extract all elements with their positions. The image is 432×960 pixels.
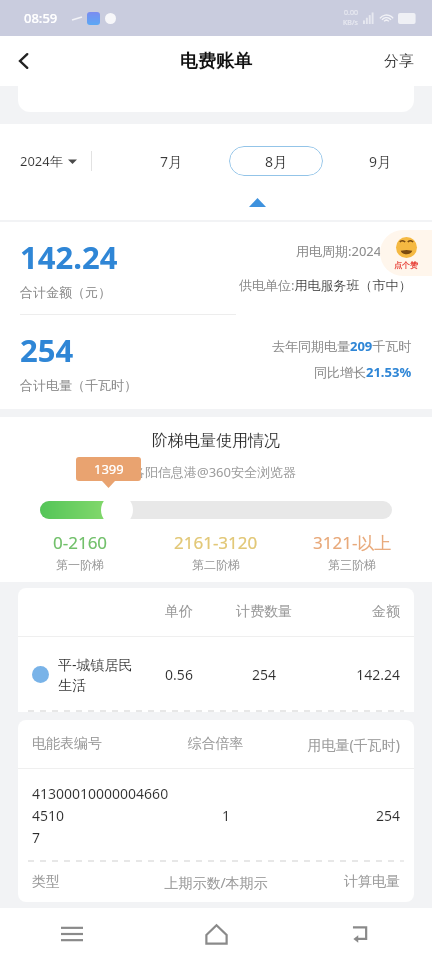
- staticText: 合计电量（千瓦时）: [20, 377, 137, 393]
- staticText: 0-2160: [53, 531, 108, 554]
- button[interactable]: 点个赞: [380, 230, 432, 276]
- staticText: 2161-3120: [174, 531, 258, 554]
- staticText: 供电单位:用电服务班（市中）: [239, 276, 412, 294]
- button[interactable]: 分享: [366, 40, 432, 83]
- button[interactable]: Back: [0, 37, 48, 85]
- staticText: 金额: [312, 603, 400, 621]
- staticText: 142.24: [20, 236, 118, 278]
- staticText: 用电周期:2024-08-0: [296, 242, 412, 260]
- staticText: 综合倍率: [167, 735, 264, 753]
- button[interactable]: 413000100000046604510 7: [32, 769, 400, 861]
- staticText: KB/s: [343, 18, 358, 28]
- button[interactable]: Back: [288, 908, 432, 960]
- button[interactable]: 7月: [150, 146, 193, 177]
- staticText: 单价: [142, 603, 216, 621]
- staticText: 用电量(千瓦时): [264, 735, 400, 754]
- staticText: 254: [277, 806, 400, 825]
- staticText: 1399: [94, 460, 124, 478]
- staticText: 合计金额（元）: [20, 284, 111, 300]
- staticText: 洛阳信息港@360安全浏览器: [132, 463, 296, 481]
- button[interactable]: 8月: [229, 146, 323, 176]
- staticText: 点个赞: [394, 260, 418, 270]
- staticText: 3121-以上: [313, 531, 392, 554]
- staticText: 电费账单: [180, 50, 252, 73]
- staticText: 去年同期电量209千瓦时: [272, 337, 412, 355]
- staticText: 0.00: [344, 8, 358, 18]
- button[interactable]: 平-城镇居民生活: [32, 637, 400, 711]
- staticText: 8月: [265, 152, 288, 171]
- staticText: 254: [20, 329, 74, 371]
- staticText: 1: [175, 806, 277, 825]
- staticText: 2024年: [20, 152, 63, 170]
- staticText: 08:59: [24, 9, 58, 27]
- staticText: 分享: [384, 52, 414, 71]
- staticText: 142.24: [312, 665, 400, 684]
- staticText: 计费数量: [216, 603, 312, 621]
- staticText: 电能表编号: [32, 735, 167, 753]
- staticText: 第一阶梯: [56, 557, 104, 572]
- button[interactable]: Home: [144, 908, 288, 960]
- staticText: 阶梯电量使用情况: [0, 431, 432, 451]
- button[interactable]: Recents: [0, 908, 144, 960]
- staticText: 平-城镇居民生活: [58, 655, 142, 694]
- staticText: 上期示数/本期示: [134, 873, 298, 892]
- staticText: 同比增长21.53%: [314, 363, 412, 381]
- staticText: 413000100000046604510 7: [32, 784, 175, 847]
- staticText: 254: [216, 665, 312, 684]
- button[interactable]: 9月: [359, 146, 402, 177]
- staticText: 类型: [32, 873, 134, 891]
- staticText: 0.56: [142, 665, 216, 684]
- staticText: 第二阶梯: [192, 557, 240, 572]
- staticText: 计算电量: [298, 873, 400, 891]
- staticText: 第三阶梯: [328, 557, 376, 572]
- button[interactable]: 2024年: [20, 152, 77, 170]
